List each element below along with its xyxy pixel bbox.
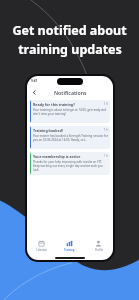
staticText: Training [64, 248, 75, 252]
staticText: 9:41 [31, 79, 38, 83]
button[interactable]: Training [55, 237, 84, 255]
staticText: Your membership is active [33, 154, 104, 159]
staticText: 1 h [104, 102, 108, 106]
button[interactable]: Training booked! [30, 126, 110, 149]
button[interactable]: Your membership is active [30, 152, 110, 175]
button[interactable]: Profile [84, 237, 113, 255]
staticText: 1 h [104, 128, 108, 132]
staticText: Your trainer has booked a Strength Train… [33, 134, 108, 142]
staticText: Notifications [54, 89, 87, 96]
staticText: Profile [95, 248, 103, 252]
button[interactable]: Calendar [27, 237, 55, 255]
staticText: Calendar [36, 248, 47, 252]
staticText: 1 h [104, 154, 108, 158]
staticText: Training booked! [33, 128, 104, 133]
staticText: Thanks for your help improving with resu… [33, 160, 108, 172]
button[interactable]: Ready for this training? [30, 100, 110, 123]
staticText: Your training is about to begin at 14:00… [33, 108, 108, 116]
button[interactable]: Back [30, 88, 39, 97]
staticText: Get notified about [12, 22, 127, 39]
staticText: Ready for this training? [33, 102, 104, 107]
staticText: training updates [18, 41, 122, 58]
